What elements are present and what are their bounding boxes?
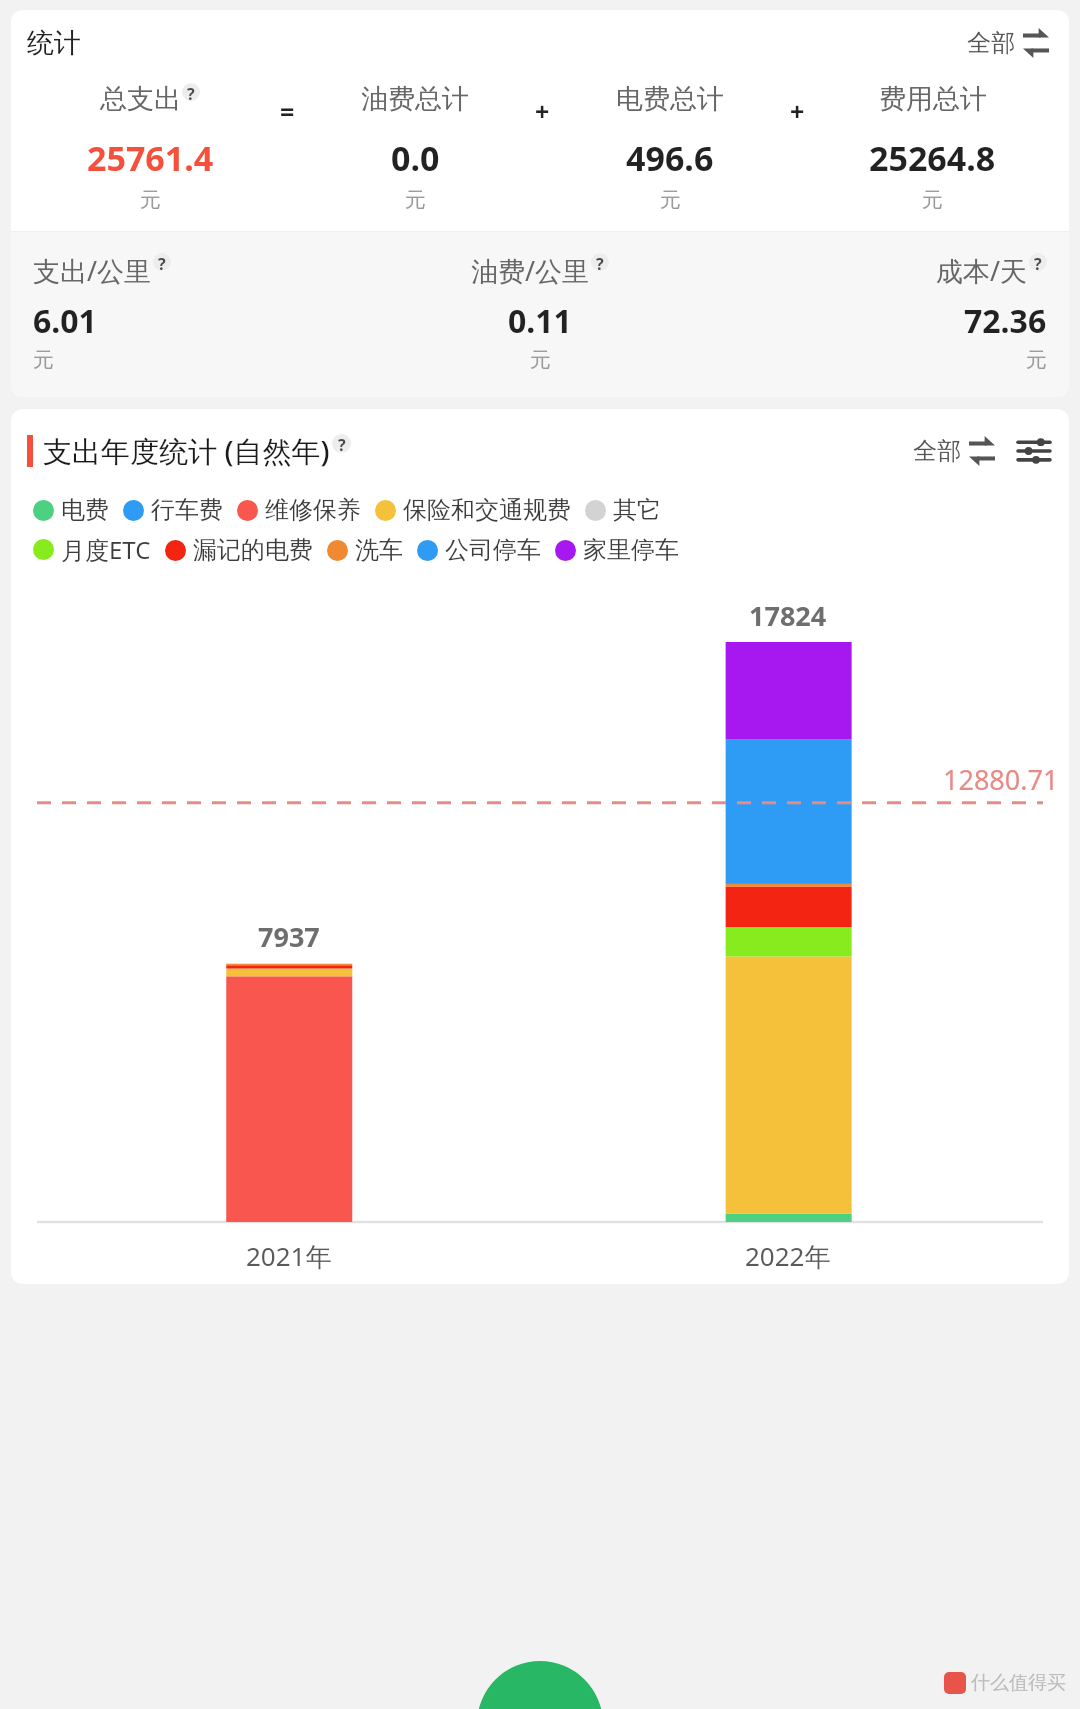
staticText: + — [790, 94, 805, 128]
button[interactable]: 成本/天 — [709, 252, 1047, 373]
staticText: ? — [1034, 253, 1042, 271]
staticText: 17824 — [749, 597, 827, 634]
staticText: 什么值得买 — [971, 1671, 1066, 1695]
button[interactable]: 维修保养 — [237, 495, 361, 525]
staticText: 元 — [140, 187, 161, 213]
staticText: 成本/天 — [936, 252, 1028, 289]
staticText: 电费总计 — [616, 82, 724, 116]
staticText: 支出/公里 — [33, 252, 152, 289]
button[interactable]: 行车费 — [123, 495, 223, 525]
staticText: + — [535, 94, 550, 128]
button[interactable]: 油费/公里 — [371, 252, 709, 373]
button[interactable]: 电费 — [33, 495, 109, 525]
staticText: 元 — [33, 347, 54, 373]
staticText: 元 — [660, 187, 681, 213]
staticText: 6.01 — [33, 299, 97, 343]
staticText: 元 — [405, 187, 426, 213]
button[interactable]: 公司停车 — [417, 535, 541, 565]
staticText: 7937 — [258, 918, 320, 955]
staticText: 油费/公里 — [471, 252, 590, 289]
button[interactable]: Filter settings — [1015, 432, 1053, 470]
staticText: 行车费 — [151, 495, 223, 525]
button[interactable]: Add record — [477, 1661, 603, 1709]
staticText: 费用总计 — [879, 82, 987, 116]
button[interactable]: 油费总计 — [296, 82, 534, 213]
staticText: ? — [338, 434, 346, 453]
staticText: 全部 — [967, 28, 1015, 58]
staticText: 洗车 — [355, 535, 403, 565]
staticText: ? — [158, 253, 166, 271]
button[interactable]: 洗车 — [327, 535, 403, 565]
button[interactable]: 月度ETC — [33, 533, 151, 566]
button[interactable]: 全部 — [909, 432, 999, 470]
staticText: 统计 — [27, 26, 81, 60]
button[interactable]: 支出/公里 — [33, 252, 371, 373]
staticText: 家里停车 — [583, 535, 679, 565]
staticText: 公司停车 — [445, 535, 541, 565]
button[interactable]: 电费总计 — [551, 82, 789, 213]
staticText: 25264.8 — [869, 135, 996, 181]
staticText: 元 — [1026, 347, 1047, 373]
staticText: 2021年 — [246, 1238, 332, 1274]
button[interactable]: 总支出 — [21, 82, 279, 213]
staticText: 总支出 — [100, 82, 181, 116]
button[interactable]: 漏记的电费 — [165, 535, 313, 565]
staticText: 月度ETC — [61, 533, 151, 566]
button[interactable]: 其它 — [585, 495, 661, 525]
staticText: 全部 — [913, 436, 961, 466]
staticText: 12880.71 — [943, 761, 1059, 798]
staticText: ? — [187, 83, 195, 101]
staticText: 2022年 — [745, 1238, 831, 1274]
staticText: 支出年度统计 (自然年) — [43, 431, 330, 471]
staticText: 0.0 — [391, 135, 440, 181]
staticText: 25761.4 — [87, 135, 214, 181]
staticText: 其它 — [613, 495, 661, 525]
button[interactable]: 费用总计 — [806, 82, 1059, 213]
button[interactable]: 全部 — [963, 24, 1053, 62]
staticText: 漏记的电费 — [193, 535, 313, 565]
staticText: 维修保养 — [265, 495, 361, 525]
staticText: 元 — [922, 187, 943, 213]
staticText: 元 — [530, 347, 551, 373]
staticText: 保险和交通规费 — [403, 495, 571, 525]
button[interactable]: 家里停车 — [555, 535, 679, 565]
staticText: 0.11 — [508, 299, 572, 343]
staticText: ? — [596, 253, 604, 271]
button[interactable]: 保险和交通规费 — [375, 495, 571, 525]
staticText: 油费总计 — [361, 82, 469, 116]
staticText: 72.36 — [964, 299, 1047, 343]
staticText: = — [280, 94, 295, 128]
staticText: 496.6 — [626, 135, 714, 181]
staticText: 电费 — [61, 495, 109, 525]
